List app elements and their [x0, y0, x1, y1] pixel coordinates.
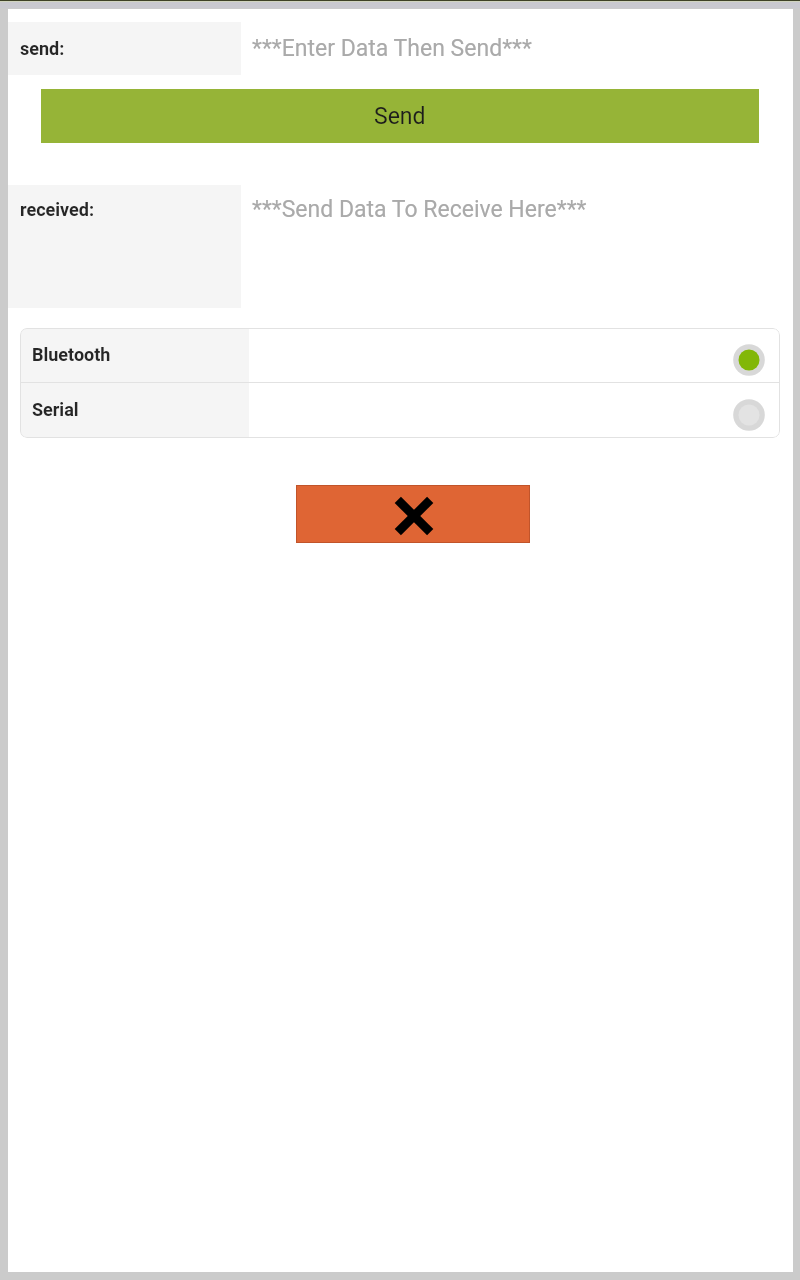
staticText: Send	[374, 103, 426, 130]
staticText: Serial	[32, 399, 79, 420]
button[interactable]: Send	[41, 89, 759, 143]
button[interactable]: Serial	[20, 383, 780, 437]
staticText: ***Enter Data Then Send***	[252, 35, 532, 62]
button[interactable]: Bluetooth	[20, 328, 780, 382]
button[interactable]: Clear	[297, 486, 529, 542]
staticText: send:	[20, 38, 65, 59]
staticText: Bluetooth	[32, 344, 111, 365]
staticText: received:	[20, 199, 94, 220]
staticText: ***Send Data To Receive Here***	[252, 196, 587, 223]
